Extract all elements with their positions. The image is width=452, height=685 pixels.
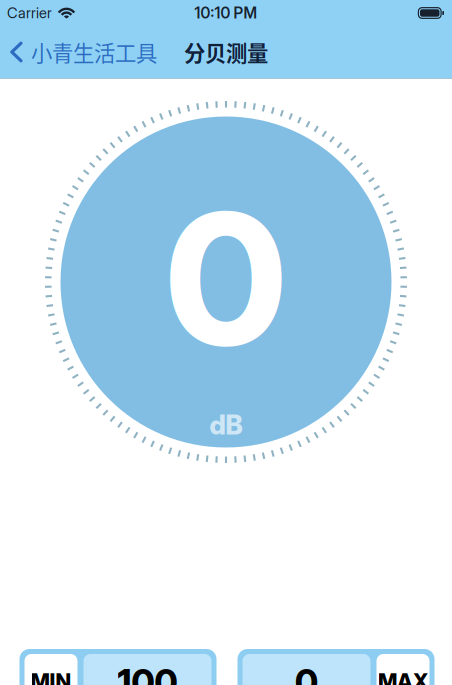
staticText: 10:10 PM [194,4,257,22]
staticText: 0 [295,661,318,685]
staticText: 100 [117,661,177,685]
button[interactable]: 小青生活工具 [0,26,165,78]
staticText: MIN [30,669,71,685]
button[interactable]: MIN [19,649,216,685]
button[interactable]: 0 [237,649,434,685]
staticText: Carrier [7,4,52,22]
staticText: 小青生活工具 [31,37,157,67]
staticText: dB [209,409,242,441]
staticText: MAX [378,669,428,685]
staticText: 0 [165,169,286,389]
staticText: 分贝测量 [184,37,268,67]
